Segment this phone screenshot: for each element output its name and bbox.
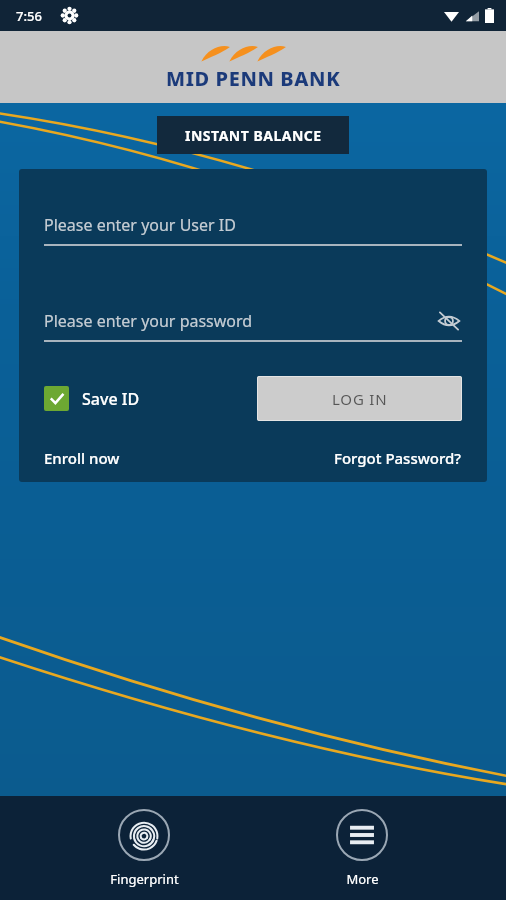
staticText: More <box>346 870 379 888</box>
staticText: 7:56 <box>16 7 42 25</box>
button[interactable]: INSTANT BALANCE <box>157 116 349 154</box>
button[interactable]: Show password <box>436 308 462 334</box>
button[interactable]: Forgot Password? <box>334 448 462 468</box>
button[interactable]: More options <box>287 803 437 894</box>
staticText: Forgot Password? <box>334 448 462 468</box>
staticText: INSTANT BALANCE <box>185 126 322 145</box>
staticText: MID PENN BANK <box>166 65 341 92</box>
other: Fingerprint login <box>130 821 158 849</box>
other: More options <box>349 822 375 848</box>
staticText: LOG IN <box>332 389 388 409</box>
staticText: Save ID <box>82 388 140 410</box>
button[interactable]: Enroll now <box>44 448 120 468</box>
staticText: Fingerprint <box>110 870 179 888</box>
button[interactable]: Please enter your User ID <box>44 214 462 246</box>
button[interactable]: Fingerprint login <box>69 803 219 894</box>
button[interactable]: Save ID <box>44 386 140 411</box>
staticText: Please enter your User ID <box>44 214 236 236</box>
staticText: Please enter your password <box>44 310 436 332</box>
button[interactable]: Please enter your password <box>44 308 462 342</box>
staticText: Enroll now <box>44 448 120 468</box>
button[interactable]: LOG IN <box>257 376 462 421</box>
